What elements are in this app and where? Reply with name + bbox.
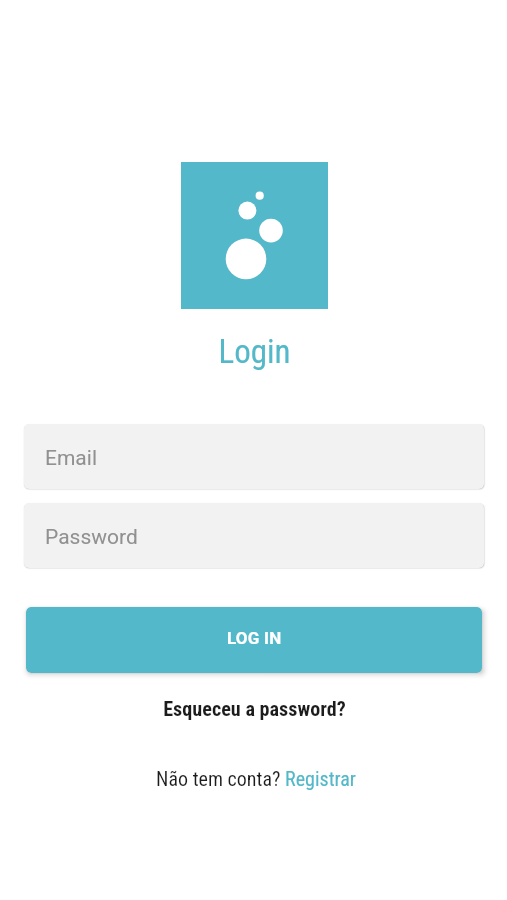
button[interactable]: App logo: [181, 162, 328, 309]
staticText: LOG IN: [227, 628, 282, 648]
button[interactable]: Password: [24, 503, 484, 568]
staticText: Password: [45, 525, 138, 550]
button[interactable]: LOG IN: [26, 607, 482, 673]
staticText: Email: [45, 446, 97, 471]
button[interactable]: Não tem conta? Registrar: [156, 767, 356, 790]
button[interactable]: Esqueceu a password?: [163, 697, 346, 721]
button[interactable]: Email: [24, 424, 484, 489]
staticText: Login: [1, 332, 507, 371]
